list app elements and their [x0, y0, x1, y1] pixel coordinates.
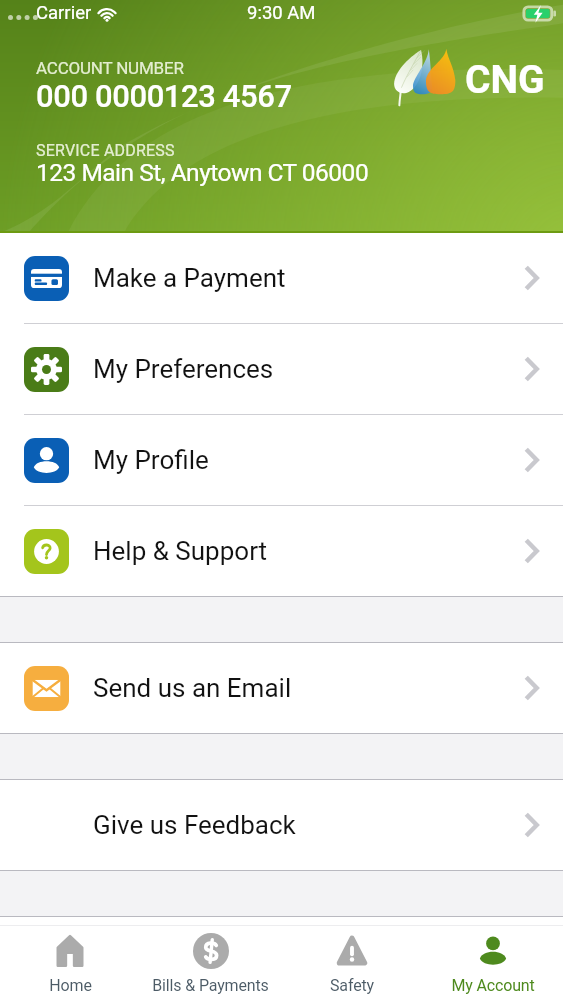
staticText: Carrier: [36, 2, 92, 24]
staticText: SERVICE ADDRESS: [36, 141, 175, 160]
button[interactable]: Make a Payment: [0, 233, 563, 323]
staticText: Home: [49, 976, 92, 995]
staticText: Bills & Payments: [152, 976, 269, 995]
staticText: My Profile: [93, 445, 209, 475]
staticText: CNG: [465, 57, 545, 103]
button[interactable]: Bills & Payments: [140, 928, 281, 1000]
staticText: Make a Payment: [93, 263, 286, 293]
button[interactable]: Safety: [281, 928, 422, 1000]
button[interactable]: My Preferences: [0, 324, 563, 414]
staticText: ACCOUNT NUMBER: [36, 58, 184, 78]
staticText: Send us an Email: [93, 673, 292, 703]
button[interactable]: My Account: [422, 928, 563, 1000]
staticText: 123 Main St, Anytown CT 06000: [36, 158, 369, 187]
staticText: Give us Feedback: [93, 810, 296, 840]
staticText: Safety: [330, 976, 374, 995]
button[interactable]: Send us an Email: [0, 643, 563, 733]
button[interactable]: Home: [0, 928, 140, 1000]
staticText: Help & Support: [93, 536, 268, 566]
button[interactable]: Give us Feedback: [0, 780, 563, 870]
button[interactable]: My Profile: [0, 415, 563, 505]
button[interactable]: Help & Support: [0, 506, 563, 596]
staticText: My Account: [451, 976, 535, 995]
staticText: My Preferences: [93, 354, 274, 384]
staticText: 9:30 AM: [247, 2, 316, 24]
staticText: 000 0000123 4567: [36, 78, 292, 114]
